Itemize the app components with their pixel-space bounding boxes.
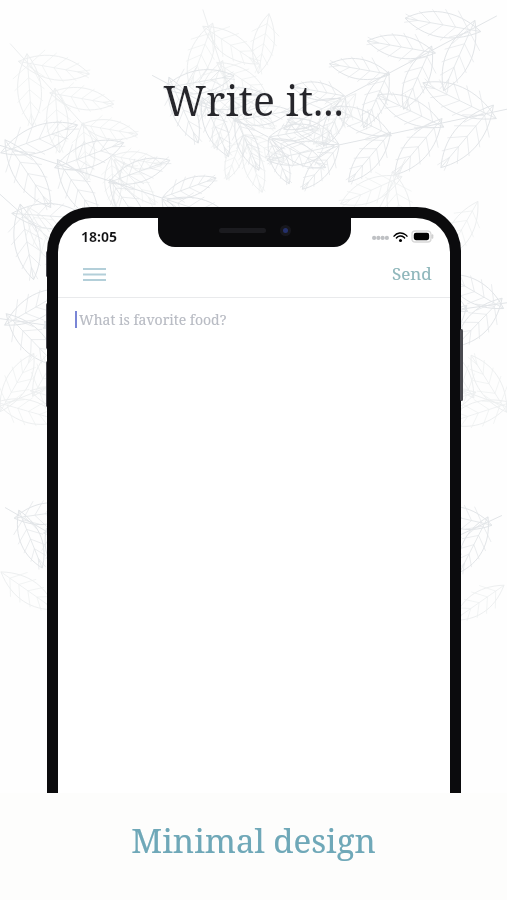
staticText: Send xyxy=(392,262,432,285)
button[interactable]: Menu xyxy=(72,252,116,296)
staticText: 18:05 xyxy=(81,227,117,246)
button[interactable]: Send xyxy=(380,254,444,293)
staticText: Minimal design xyxy=(131,818,376,863)
staticText: Write it... xyxy=(163,72,344,128)
staticText: What is favorite food? xyxy=(79,310,227,329)
